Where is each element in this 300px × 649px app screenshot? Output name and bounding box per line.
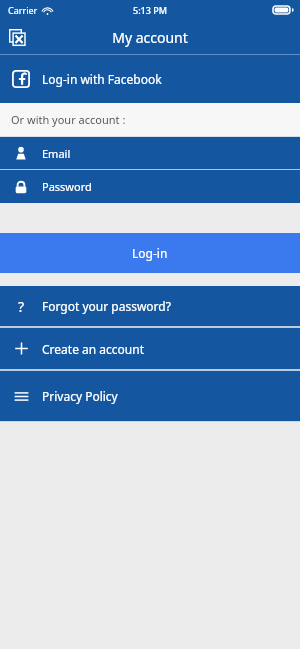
button[interactable]: Create an account <box>0 328 300 369</box>
button[interactable]: Log-in with Facebook <box>0 55 300 103</box>
staticText: Create an account <box>42 341 144 357</box>
staticText: Or with your account : <box>11 112 126 127</box>
staticText: Email <box>42 146 71 161</box>
staticText: Forgot your password? <box>42 298 171 314</box>
staticText: Log-in with Facebook <box>42 71 162 87</box>
staticText: My account <box>112 28 188 47</box>
staticText: Privacy Policy <box>42 388 118 404</box>
staticText: Password <box>42 179 92 194</box>
button[interactable]: Log-in <box>0 233 300 273</box>
staticText: ? <box>18 297 25 316</box>
staticText: Log-in <box>132 245 168 261</box>
button[interactable]: Password <box>0 170 300 203</box>
staticText: Carrier <box>8 4 38 16</box>
button[interactable]: ? <box>0 286 300 326</box>
button[interactable]: Privacy Policy <box>0 371 300 421</box>
staticText: 5:13 PM <box>133 4 167 16</box>
button[interactable]: Close <box>4 24 30 50</box>
button[interactable]: Email <box>0 137 300 169</box>
